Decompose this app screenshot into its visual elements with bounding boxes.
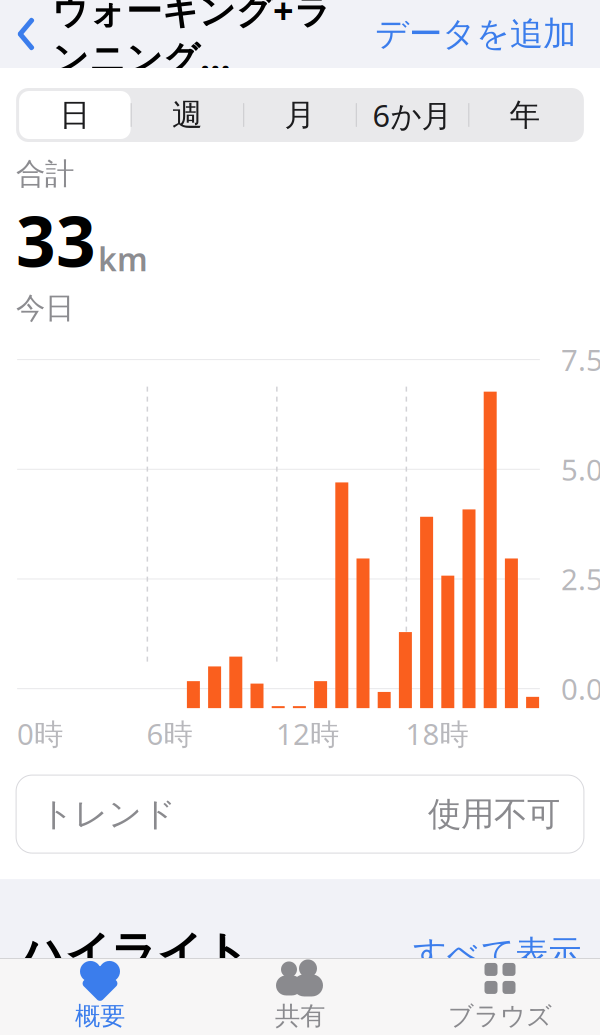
button[interactable]: 日 (19, 91, 131, 139)
button[interactable]: 共有 (200, 958, 400, 1035)
button[interactable]: 6か月 (357, 91, 468, 139)
button[interactable]: トレンド (16, 775, 584, 853)
staticText: ウォーキング+ランニングの距離 (42, 1021, 519, 1035)
staticText: 0時 (17, 714, 63, 753)
staticText: 33 (16, 194, 96, 286)
staticText: km (98, 238, 148, 280)
button[interactable]: 戻る (0, 5, 52, 63)
staticText: 今日 (16, 290, 74, 326)
staticText: 2.5 (561, 559, 600, 598)
button[interactable]: 年 (469, 91, 581, 139)
staticText: ウォーキング+ランニング… (52, 0, 331, 82)
button[interactable]: すべて表示 (413, 932, 581, 973)
staticText: 共有 (275, 1000, 325, 1031)
staticText: トレンド (40, 794, 176, 834)
staticText: 0.0 (561, 669, 600, 708)
staticText: ブラウズ (448, 1000, 552, 1031)
staticText: 6か月 (373, 95, 453, 135)
staticText: 18時 (406, 714, 469, 753)
staticText: 月 (284, 96, 315, 134)
button[interactable]: ブラウズ (400, 958, 600, 1035)
button[interactable]: 週 (132, 91, 243, 139)
staticText: 5.0 (561, 450, 600, 489)
staticText: 年 (510, 96, 541, 134)
staticText: ハイライト (19, 925, 249, 981)
staticText: 週 (172, 96, 203, 134)
staticText: 7.5 (561, 340, 600, 379)
button[interactable]: 月 (244, 91, 356, 139)
staticText: 12時 (276, 714, 339, 753)
staticText: 6時 (147, 714, 193, 753)
staticText: データを追加 (375, 13, 576, 54)
button[interactable]: データを追加 (375, 13, 600, 54)
staticText: 概要 (75, 1000, 125, 1031)
button[interactable]: 概要 (0, 958, 200, 1035)
button[interactable]: ウォーキング+ランニングの距離 (16, 999, 584, 1035)
staticText: すべて表示 (413, 932, 581, 973)
staticText: 日 (59, 96, 90, 134)
staticText: 合計 (16, 156, 74, 192)
staticText: 使用不可 (428, 794, 560, 834)
